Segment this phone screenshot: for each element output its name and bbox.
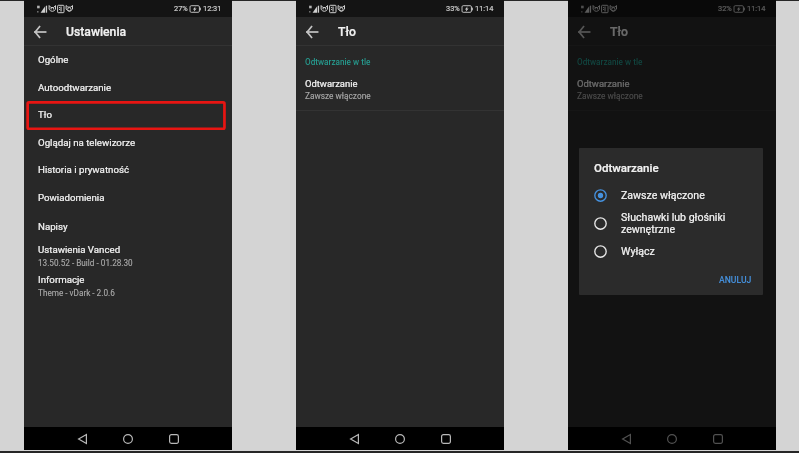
staticText: 13.50.52 - Build - 01.28.30 — [38, 258, 133, 268]
staticText: Oglądaj na telewizorze — [38, 137, 136, 148]
staticText: Autoodtwarzanie — [38, 82, 112, 93]
staticText: Tło — [610, 25, 628, 39]
staticText: Napisy — [38, 221, 68, 232]
staticText: Ogólne — [38, 54, 69, 65]
staticText: Ustawienia Vanced — [38, 244, 121, 255]
button[interactable]: Autoodtwarzanie — [24, 73, 232, 101]
button[interactable]: Słuchawki lub głośniki — [579, 208, 763, 238]
staticText: Zawsze włączone — [305, 91, 371, 101]
button[interactable]: Powiadomienia — [24, 183, 232, 211]
staticText: Informacje — [38, 274, 85, 285]
staticText: 12:31 — [203, 4, 222, 13]
button[interactable]: Home — [389, 428, 411, 450]
button[interactable]: Recent apps — [435, 428, 457, 450]
button[interactable]: Ogólne — [24, 46, 232, 73]
staticText: 32% — [718, 4, 732, 13]
button[interactable]: Navigate up — [29, 17, 51, 46]
button[interactable]: Oglądaj na telewizorze — [24, 128, 232, 156]
button[interactable]: Recent apps — [707, 428, 729, 450]
button[interactable]: Informacje — [24, 271, 232, 301]
staticText: Historia i prywatność — [38, 164, 129, 175]
staticText: Zawsze włączone — [621, 189, 705, 201]
staticText: Powiadomienia — [38, 192, 105, 203]
button[interactable]: Home — [117, 428, 139, 450]
button[interactable]: Home — [661, 428, 683, 450]
button[interactable]: Navigate up — [301, 17, 323, 46]
button[interactable]: ANULUJ — [705, 269, 763, 295]
button[interactable]: Back — [343, 428, 365, 450]
button[interactable]: Historia i prywatność — [24, 156, 232, 183]
staticText: Odtwarzanie w tle — [305, 57, 371, 67]
staticText: 11:14 — [747, 4, 766, 13]
staticText: zewnętrzne — [621, 223, 675, 235]
button[interactable]: Wyłącz — [579, 238, 763, 264]
staticText: ANULUJ — [719, 275, 752, 285]
staticText: 27% — [174, 4, 188, 13]
button[interactable]: Navigate up — [573, 17, 595, 46]
staticText: Tło — [338, 25, 356, 39]
staticText: Słuchawki lub głośniki — [621, 211, 726, 223]
button[interactable]: Zawsze włączone — [579, 182, 763, 208]
button[interactable]: Odtwarzanie — [296, 78, 504, 101]
staticText: Ustawienia — [66, 25, 127, 39]
staticText: Odtwarzanie w tle — [577, 57, 643, 67]
staticText: Wyłącz — [621, 245, 655, 257]
button[interactable]: Tło — [24, 101, 232, 128]
staticText: 33% — [446, 4, 460, 13]
staticText: Theme - vDark - 2.0.6 — [38, 288, 115, 298]
button[interactable]: Back — [615, 428, 637, 450]
staticText: Zawsze włączone — [577, 91, 643, 101]
button[interactable]: Napisy — [24, 211, 232, 241]
staticText: Odtwarzanie — [305, 78, 358, 89]
staticText: Tło — [38, 109, 52, 120]
staticText: 11:14 — [475, 4, 494, 13]
button[interactable]: Back — [71, 428, 93, 450]
button[interactable]: Ustawienia Vanced — [24, 241, 232, 271]
staticText: Odtwarzanie — [594, 161, 659, 174]
button[interactable]: Odtwarzanie — [568, 78, 776, 101]
staticText: Odtwarzanie — [577, 78, 630, 89]
button[interactable]: Recent apps — [163, 428, 185, 450]
